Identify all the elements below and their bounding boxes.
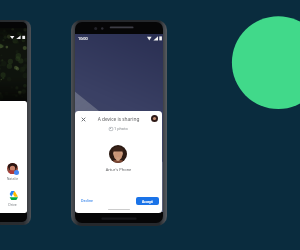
- staticText: 1 photo: [114, 126, 128, 131]
- staticText: Artur's Phone: [75, 167, 162, 172]
- staticText: Decline: [81, 198, 93, 203]
- staticText: Natalie: [0, 176, 25, 181]
- button[interactable]: Close: [79, 115, 88, 124]
- staticText: A device is sharing: [75, 116, 162, 123]
- staticText: Drive: [0, 202, 25, 207]
- staticText: Accept: [142, 199, 153, 204]
- button[interactable]: Decline: [78, 195, 96, 206]
- button[interactable]: Accept: [136, 197, 159, 205]
- staticText: 10:00: [78, 36, 88, 41]
- button[interactable]: Account: [151, 115, 158, 122]
